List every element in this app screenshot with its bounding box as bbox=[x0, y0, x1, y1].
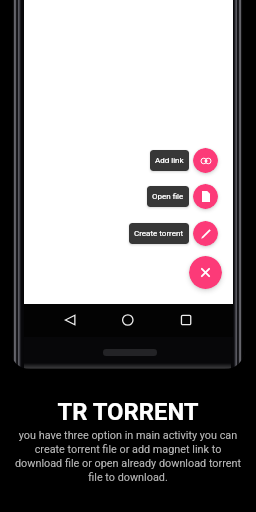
staticText: TR TORRENT bbox=[0, 398, 256, 426]
button[interactable]: Open file bbox=[193, 184, 218, 209]
staticText: Open file bbox=[152, 192, 184, 201]
button[interactable]: Open file bbox=[147, 186, 189, 207]
button[interactable]: Create torrent bbox=[129, 223, 189, 244]
button[interactable]: Add link bbox=[150, 150, 189, 171]
staticText: Add link bbox=[155, 156, 184, 165]
button[interactable]: Close menu bbox=[189, 256, 222, 289]
staticText: you have three option in main activity y… bbox=[0, 429, 256, 484]
button[interactable]: Create torrent bbox=[193, 221, 218, 246]
button[interactable]: Add link bbox=[193, 148, 218, 173]
staticText: Create torrent bbox=[134, 229, 184, 238]
